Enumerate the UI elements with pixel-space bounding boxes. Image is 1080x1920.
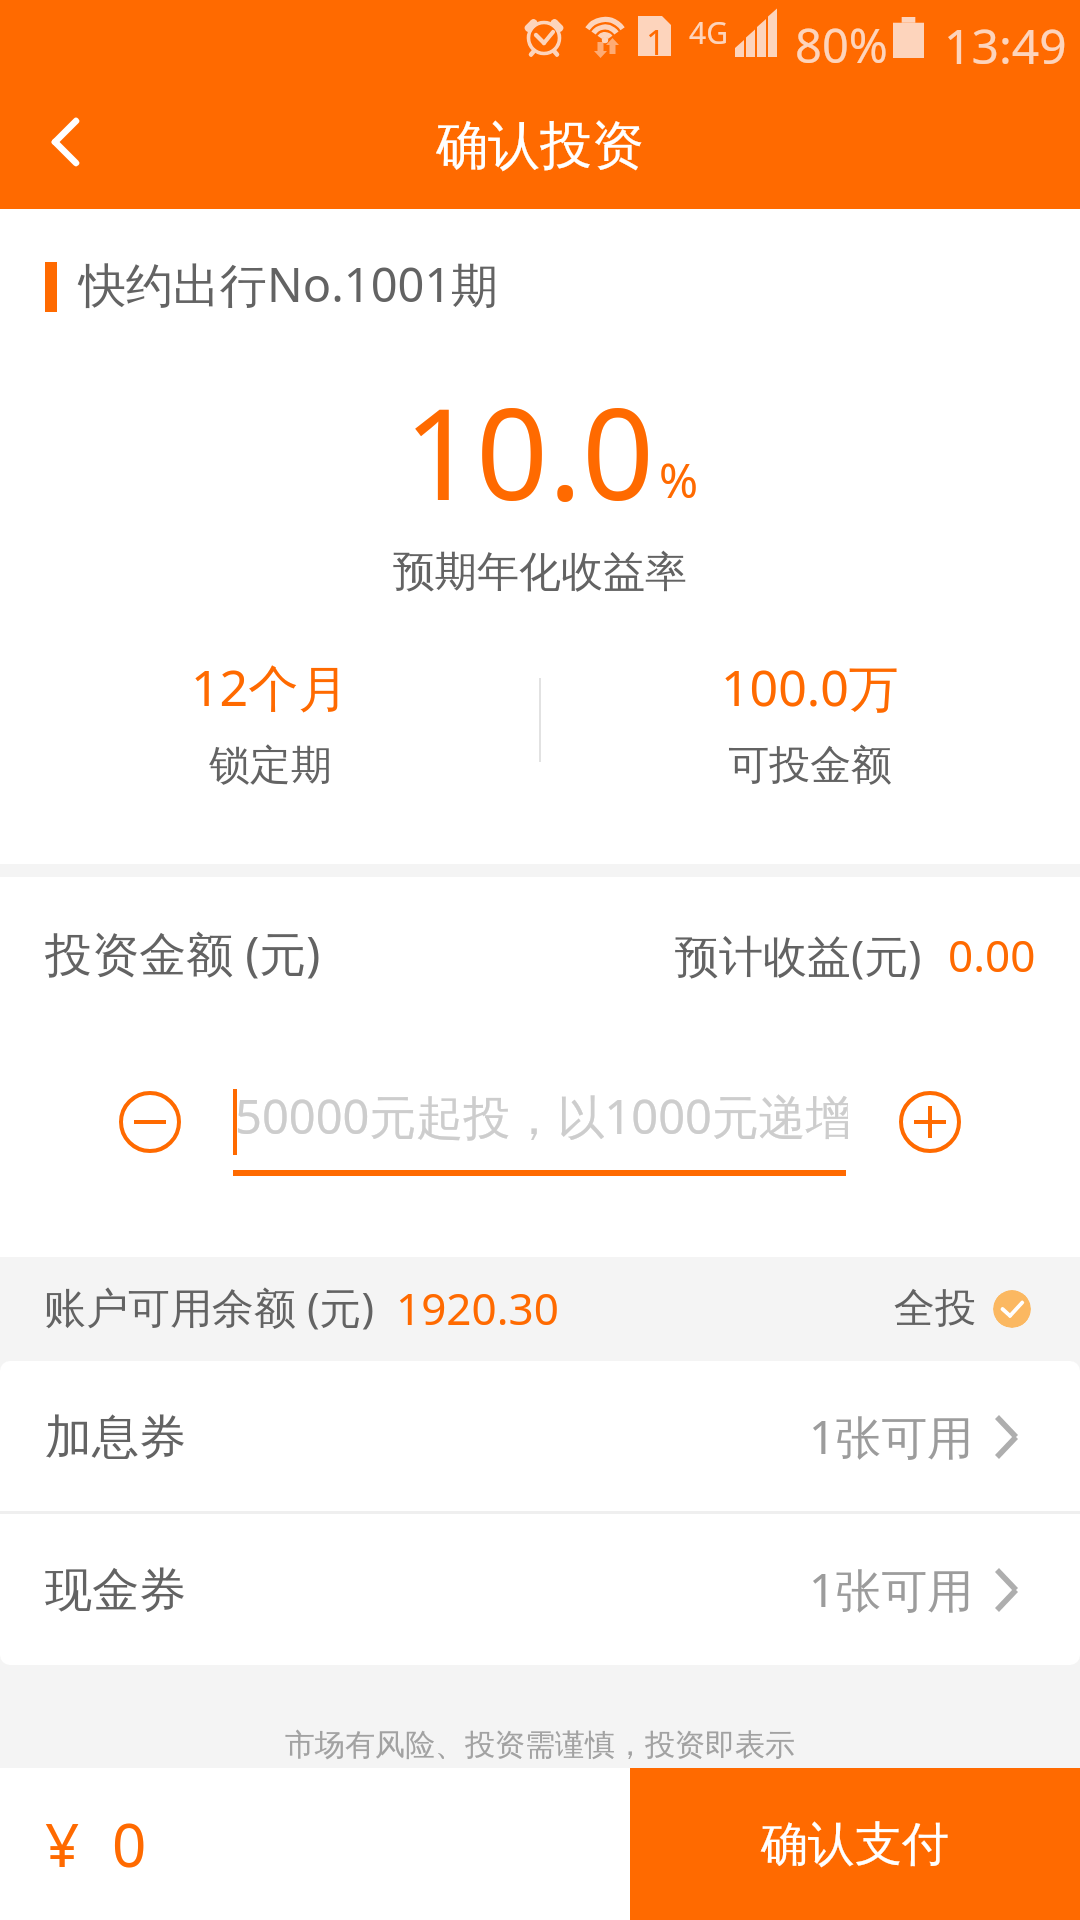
staticText: 加息券 (45, 1408, 186, 1467)
staticText: 0.00 (948, 925, 1036, 985)
staticText: % (659, 448, 699, 512)
staticText: 1张可用 (809, 1558, 974, 1621)
staticText: 锁定期 (209, 740, 332, 792)
staticText: 12个月 (191, 653, 349, 721)
staticText: 1920.30 (396, 1278, 559, 1338)
staticText: ¥ (45, 1803, 80, 1885)
button[interactable]: Increase amount (884, 1076, 976, 1168)
button[interactable]: 加息券 (0, 1361, 1080, 1511)
staticText: 现金券 (45, 1561, 186, 1620)
staticText: 100.0万 (721, 653, 899, 721)
staticText: 预期年化收益率 (0, 546, 1080, 599)
staticText: 全投 (894, 1283, 976, 1335)
staticText: 0 (112, 1803, 147, 1885)
button[interactable]: Back (10, 87, 120, 197)
staticText: 市场有风险、投资需谨慎，投资即表示 (0, 1726, 1080, 1764)
staticText: 可投金额 (728, 740, 892, 792)
staticText: 账户可用余额 (元) (44, 1278, 375, 1335)
button[interactable]: 全投 (880, 1257, 1031, 1361)
staticText: 确认投资 (0, 113, 1080, 179)
staticText: 1张可用 (809, 1405, 974, 1468)
staticText: 13:49 (944, 13, 1067, 78)
button[interactable]: 现金券 (0, 1514, 1080, 1664)
staticText: 80% (795, 13, 888, 77)
staticText: 快约出行No.1001期 (79, 252, 499, 316)
staticText: 预计收益(元) (675, 925, 922, 985)
staticText: 10.0 (404, 365, 654, 537)
staticText: 确认支付 (761, 1815, 949, 1874)
staticText: 50000元起投，以1000元递增 (235, 1084, 848, 1148)
button[interactable]: Decrease amount (104, 1076, 196, 1168)
staticText: 1 (646, 19, 666, 65)
button[interactable]: Investment amount input (233, 1075, 846, 1176)
staticText: 4G (689, 12, 728, 53)
button[interactable]: 确认支付 (630, 1768, 1080, 1920)
staticText: 投资金额 (元) (45, 921, 321, 985)
